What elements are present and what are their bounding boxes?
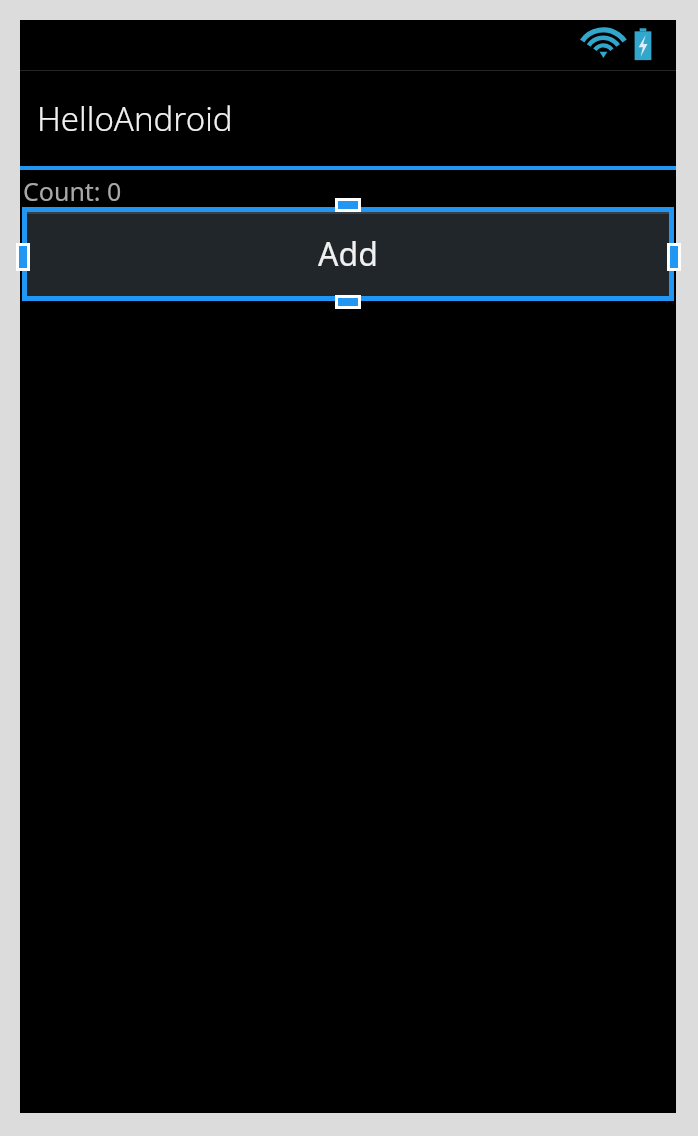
button[interactable]: Add: [22, 207, 674, 301]
staticText: Add: [318, 232, 378, 276]
staticText: Count: 0: [23, 174, 122, 208]
staticText: HelloAndroid: [37, 96, 233, 141]
